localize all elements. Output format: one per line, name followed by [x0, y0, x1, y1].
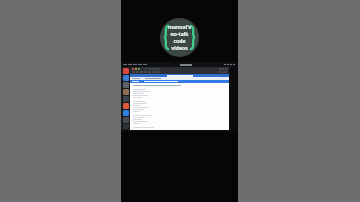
staticText: manuel's: [168, 24, 191, 31]
button[interactable]: [130, 77, 229, 80]
button[interactable]: Dock application: [123, 82, 129, 88]
button[interactable]: Dock application: [123, 68, 129, 74]
staticText: code: [173, 38, 186, 45]
staticText: no-talk: [170, 31, 189, 38]
button[interactable]: Dock application: [123, 89, 129, 95]
button[interactable]: Dock application: [123, 110, 129, 116]
button[interactable]: Dock application: [123, 117, 129, 123]
button[interactable]: Dock application: [123, 124, 129, 129]
button[interactable]: Dock application: [123, 75, 129, 81]
staticText: videos: [171, 45, 188, 52]
button[interactable]: manuel's no-talk code videos channel log…: [160, 18, 199, 57]
button[interactable]: [130, 80, 229, 83]
button[interactable]: Dock application: [123, 103, 129, 109]
button[interactable]: Dock application: [123, 96, 129, 102]
